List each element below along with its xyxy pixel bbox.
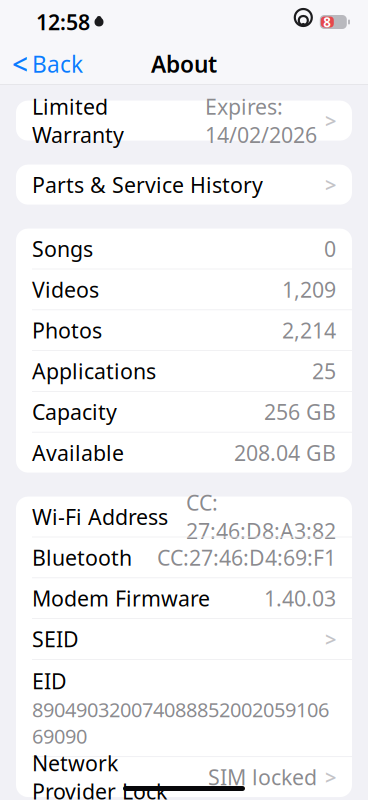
staticText: EID [32,667,67,695]
staticText: Available [32,438,124,467]
staticText: 8 [323,13,331,31]
staticText: > [325,107,336,134]
button[interactable]: Wi-Fi Address [16,497,352,537]
staticText: > [325,171,336,198]
button[interactable]: Videos [16,269,352,309]
staticText: 2,214 [282,316,336,344]
staticText: 25 [312,357,336,385]
staticText: 208.04 GB [234,438,336,467]
staticText: Back [32,49,83,79]
button[interactable]: Parts & Service History [16,165,352,205]
staticText: > [325,626,336,652]
staticText: Videos [32,275,99,303]
staticText: SEID [32,625,79,653]
staticText: 12:58 [36,8,90,36]
button[interactable]: Photos [16,310,352,350]
staticText: 0 [324,234,336,263]
button[interactable]: Limited Warranty [16,101,352,141]
staticText: About [151,49,217,79]
button[interactable]: < [0,44,95,84]
button[interactable]: Modem Firmware [16,578,352,618]
staticText: Network Provider Lock [32,749,167,800]
staticText: CC:27:46:D4:69:F1 [157,543,336,571]
staticText: 256 GB [264,398,336,426]
staticText: CC:27:46:D8:A3:82 [186,488,336,545]
staticText: 89049032007408885200205910669090 [32,696,329,749]
staticText: 1,209 [282,275,336,303]
staticText: Applications [32,357,156,385]
button[interactable]: Available [16,433,352,473]
button[interactable]: SEID [16,619,352,659]
button[interactable]: Songs [16,229,352,269]
button[interactable]: Capacity [16,392,352,432]
button[interactable]: Network Provider Lock [16,757,352,797]
staticText: Modem Firmware [32,584,210,612]
staticText: Songs [32,234,93,263]
staticText: Limited Warranty [32,92,124,149]
button[interactable]: Bluetooth [16,537,352,577]
staticText: Wi-Fi Address [32,502,168,531]
staticText: Photos [32,316,102,344]
staticText: Capacity [32,398,117,426]
staticText: 1.40.03 [264,584,336,612]
staticText: > [325,764,336,790]
staticText: Expires: 14/02/2026 [205,92,317,149]
button[interactable]: Applications [16,351,352,391]
staticText: Parts & Service History [32,170,263,199]
staticText: Bluetooth [32,543,132,571]
staticText: < [12,45,28,83]
staticText: SIM locked [208,763,317,791]
